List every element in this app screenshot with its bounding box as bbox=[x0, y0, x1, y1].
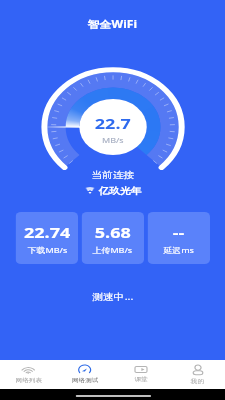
staticText: 亿玖光年 bbox=[98, 185, 142, 196]
staticText: 22.7 bbox=[95, 113, 131, 133]
button[interactable]: 5.68 bbox=[82, 212, 144, 264]
other: 网络列表 bbox=[22, 365, 35, 374]
staticText: 当前连接 bbox=[91, 169, 134, 180]
other: 课堂 bbox=[134, 366, 148, 373]
staticText: 网络测试 bbox=[72, 377, 98, 384]
staticText: 上传MB/s bbox=[92, 245, 133, 255]
staticText: -- bbox=[173, 222, 185, 242]
button[interactable]: 我的 bbox=[169, 360, 225, 389]
other: 网络测试 bbox=[78, 365, 91, 374]
staticText: 下载MB/s bbox=[28, 245, 68, 255]
staticText: 智全WiFi bbox=[88, 17, 138, 31]
button[interactable]: 22.74 bbox=[16, 212, 78, 264]
button[interactable]: 课堂 bbox=[113, 360, 169, 389]
staticText: 我的 bbox=[191, 378, 204, 385]
button[interactable]: 网络测试 bbox=[56, 360, 113, 389]
staticText: 22.74 bbox=[24, 222, 71, 242]
staticText: 课堂 bbox=[134, 376, 148, 383]
button[interactable]: 网络列表 bbox=[0, 360, 56, 389]
staticText: 5.68 bbox=[95, 222, 131, 242]
button[interactable]: -- bbox=[148, 212, 210, 264]
other: 我的 bbox=[192, 365, 204, 375]
staticText: MB/s bbox=[102, 135, 125, 145]
staticText: 测速中... bbox=[0, 290, 225, 302]
staticText: 网络列表 bbox=[16, 377, 42, 384]
staticText: 延迟ms bbox=[163, 245, 194, 255]
